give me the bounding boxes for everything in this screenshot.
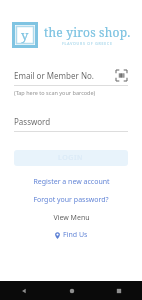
staticText: Password: [14, 116, 51, 127]
button[interactable]: View Menu: [0, 213, 142, 223]
staticText: the yiros shop.: [44, 24, 131, 40]
button[interactable]: (Tap here to scan your barcode): [14, 89, 96, 96]
staticText: y: [21, 26, 29, 44]
staticText: Email or Member No.: [14, 70, 114, 81]
staticText: Forgot your password?: [33, 195, 109, 205]
button[interactable]: Recent apps: [95, 281, 142, 300]
button[interactable]: Find Us: [0, 230, 142, 240]
button[interactable]: Home: [48, 281, 95, 300]
staticText: View Menu: [53, 213, 90, 223]
staticText: FLAVOURS OF GREECE: [62, 41, 113, 46]
staticText: Find Us: [63, 230, 88, 240]
button[interactable]: Back: [0, 281, 48, 300]
staticText: Register a new account: [33, 177, 110, 187]
button[interactable]: Forgot your password?: [0, 195, 142, 205]
button[interactable]: Register a new account: [0, 177, 142, 187]
staticText: LOGIN: [58, 153, 84, 163]
button[interactable]: Scan barcode: [114, 68, 128, 82]
